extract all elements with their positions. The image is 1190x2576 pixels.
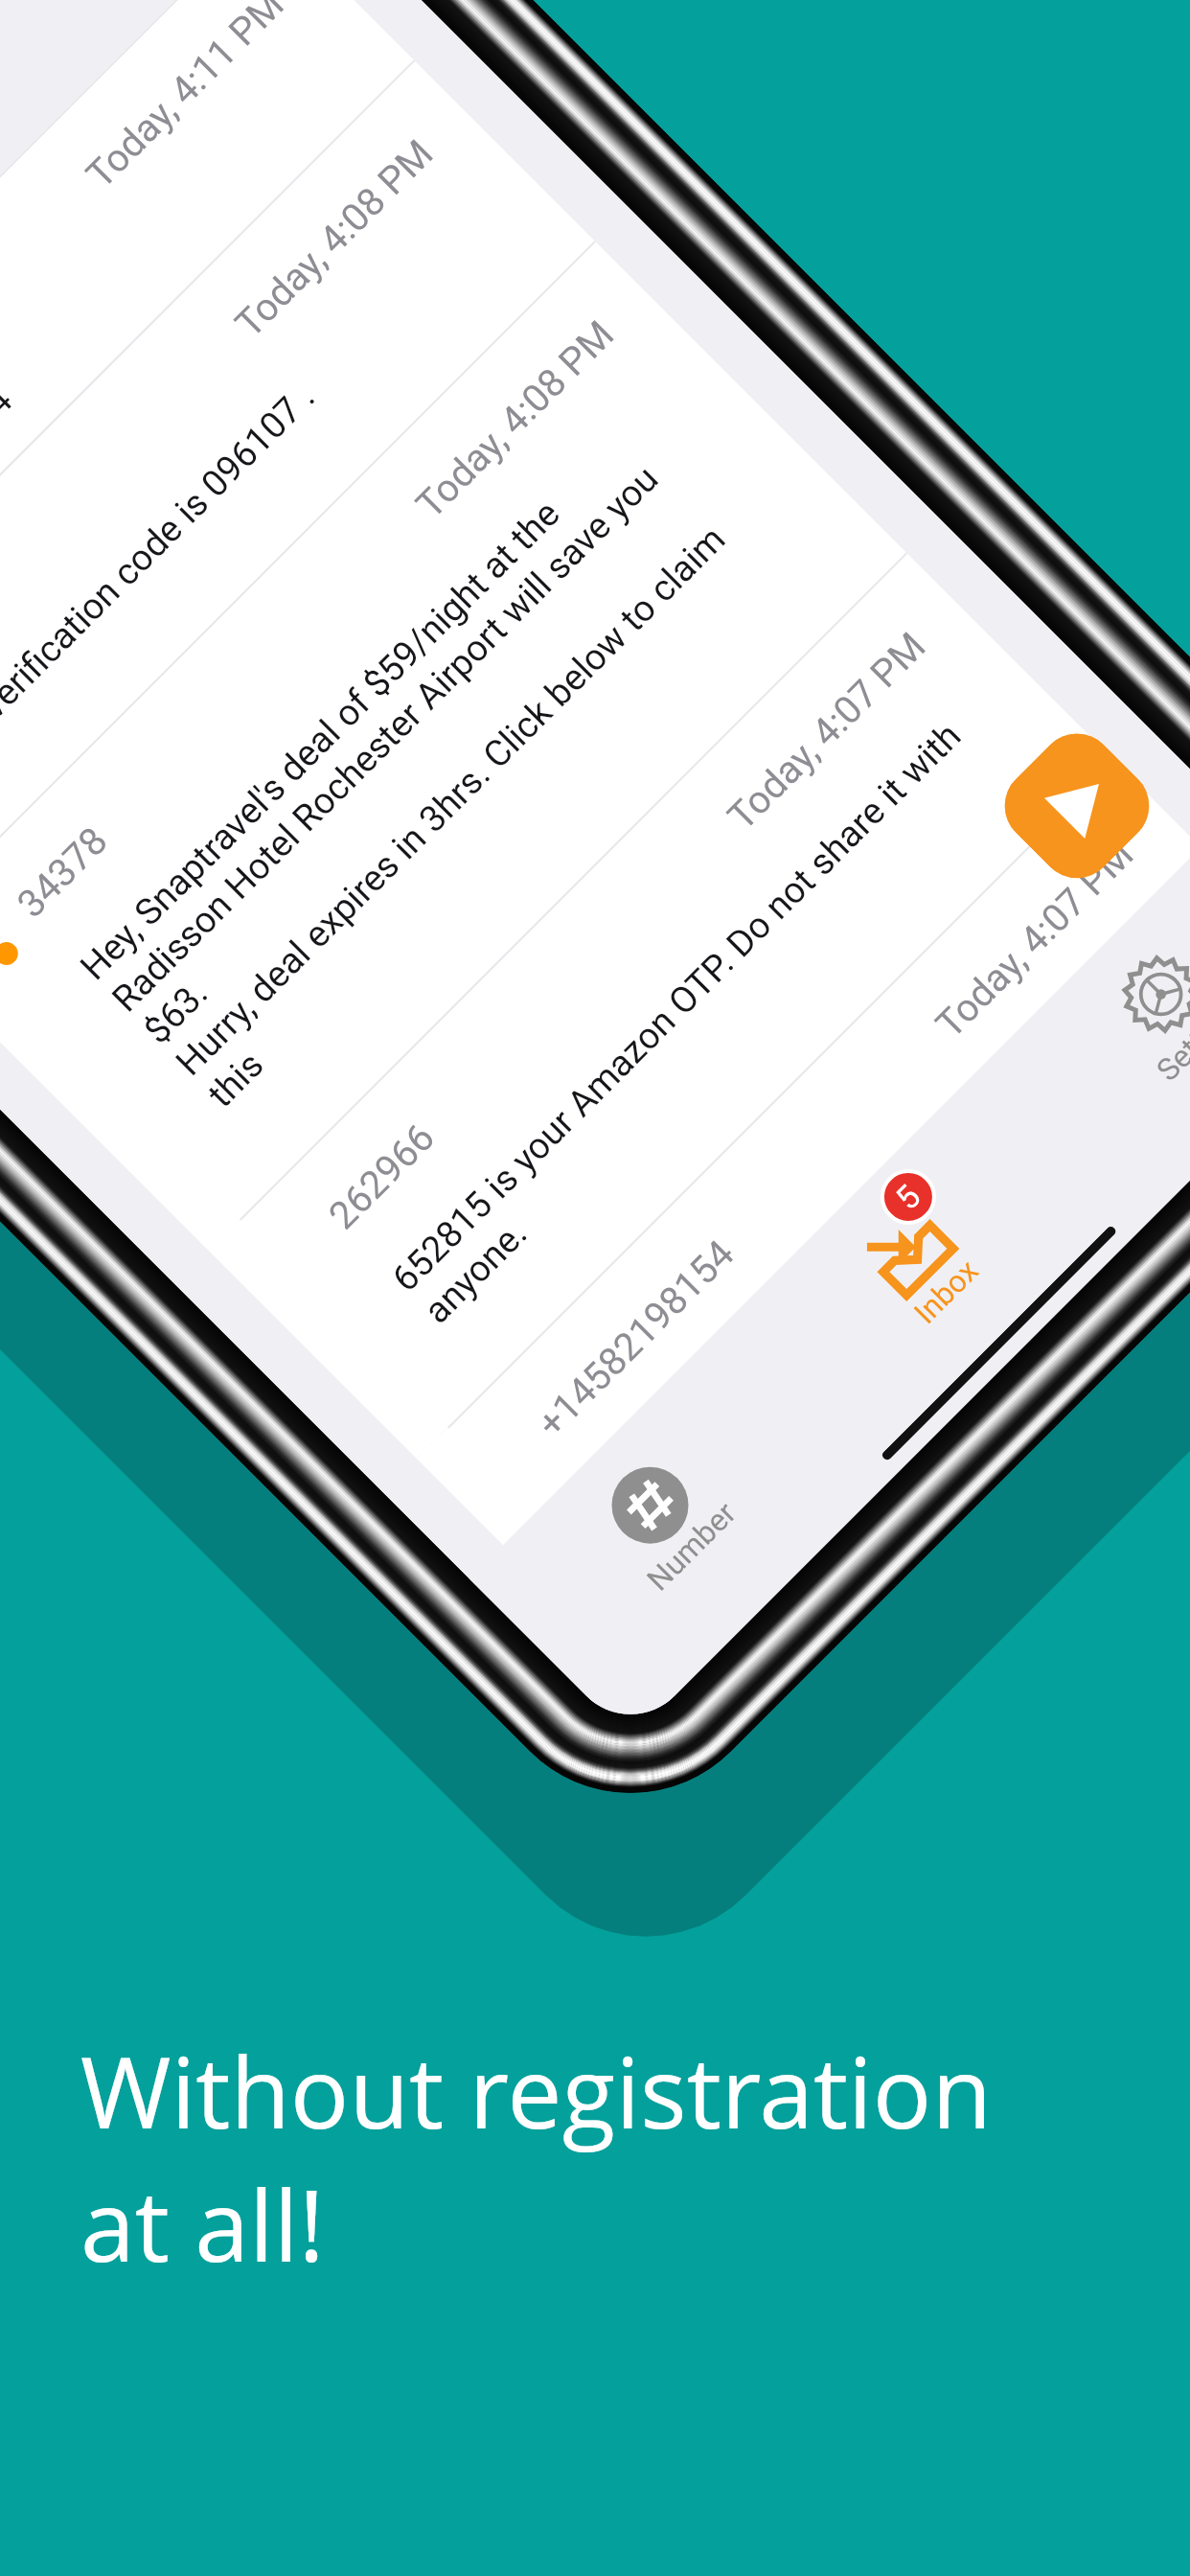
staticText: Settings [1149,983,1190,1088]
staticText: Without registration [80,2024,993,2157]
button[interactable]: 5 [724,1069,1114,1458]
button[interactable]: Number [469,1324,858,1713]
staticText: Today, 4:08 PM [408,312,623,527]
staticText: Netflix verification code is 096107 . [0,375,324,808]
button[interactable] [416,760,1190,1545]
staticText: 652815 is your Amazon OTP. Do not share … [384,714,1001,1332]
staticText: Today, 4:07 PM [719,624,935,839]
staticText: Hey, Snaptravel's deal of $59/night at t… [72,422,765,1116]
staticText: at all! [80,2157,325,2290]
button[interactable]: New message [989,718,1165,894]
staticText: Number [640,1494,744,1598]
staticText: Today, 4:07 PM [927,832,1143,1047]
staticText: +14582198154 [528,1231,743,1446]
staticText: 262966 [320,1115,443,1238]
button[interactable]: Settings [979,813,1190,1203]
staticText: 34378 [9,818,117,926]
staticText: Your code is 9272704 [0,380,21,659]
button[interactable] [208,552,1114,1458]
button[interactable] [0,0,414,758]
staticText: 5 [888,1177,929,1217]
button[interactable] [0,60,595,939]
staticText: Inbox [907,1252,986,1331]
staticText: Today, 4:08 PM [227,131,442,346]
staticText: Today, 4:11 PM [78,0,293,197]
button[interactable] [0,241,906,1250]
